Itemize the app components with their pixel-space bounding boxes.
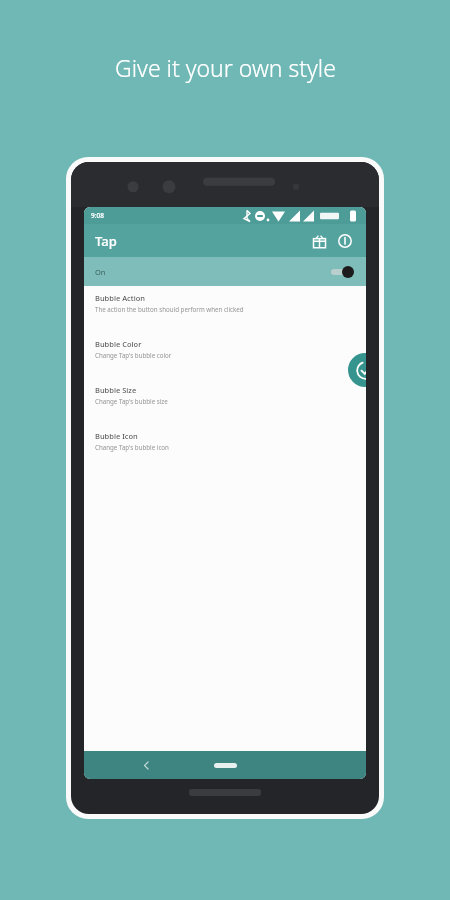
staticText: Change Tap's bubble icon [95,443,169,451]
staticText: 9:08 [91,211,104,220]
staticText: Give it your own style [115,52,336,83]
staticText: The action the button should perform whe… [95,305,244,313]
button[interactable]: Gift [306,228,332,254]
staticText: Bubble Color [95,339,142,349]
button[interactable]: Bubble Action [84,286,366,332]
button[interactable]: On [84,257,366,286]
staticText: Bubble Size [95,385,137,395]
staticText: Bubble Icon [95,431,138,441]
button[interactable]: Bubble Color [84,332,366,378]
button[interactable]: About [332,228,358,254]
button[interactable]: Back [138,757,154,773]
button[interactable]: Bubble Icon [84,424,366,470]
staticText: Change Tap's bubble color [95,351,172,359]
staticText: On [95,267,329,277]
staticText: Bubble Action [95,293,145,303]
button[interactable]: Apply [348,353,366,387]
button[interactable]: Home [214,763,237,768]
button[interactable]: Bubble Size [84,378,366,424]
staticText: Tap [95,232,306,250]
staticText: Change Tap's bubble size [95,397,168,405]
